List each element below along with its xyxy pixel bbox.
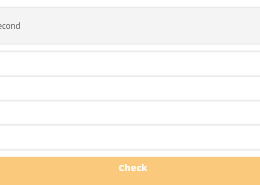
button[interactable]: Second [0,8,260,44]
button[interactable]: Check [0,157,260,185]
button[interactable]: Answer slot 3 [0,101,260,125]
staticText: Second [0,19,21,30]
staticText: Check [118,160,147,173]
